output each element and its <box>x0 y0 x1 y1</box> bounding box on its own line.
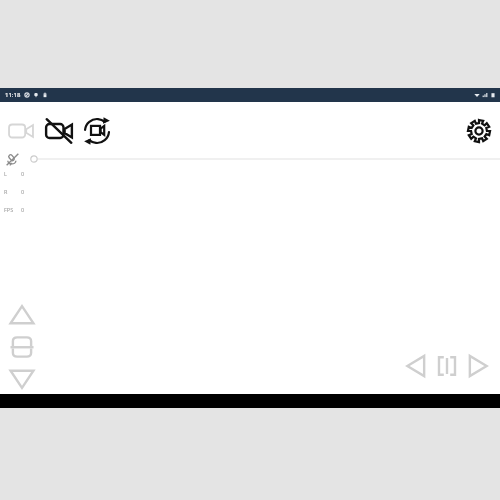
button[interactable]: Previous <box>400 350 432 382</box>
staticText: 0 <box>21 188 25 195</box>
staticText: R <box>4 188 8 195</box>
staticText: 11:18 <box>5 91 21 99</box>
button[interactable]: Volume slider <box>28 152 500 166</box>
button[interactable]: Down <box>5 362 39 396</box>
staticText: L <box>4 170 7 177</box>
button[interactable]: Microphone off <box>3 150 21 168</box>
staticText: 0 <box>21 170 25 177</box>
button[interactable]: Settings <box>462 114 496 148</box>
button[interactable]: Camera off <box>40 112 78 150</box>
staticText: FPS <box>4 206 14 213</box>
button[interactable]: Center <box>7 332 37 362</box>
staticText: 0 <box>21 206 25 213</box>
button[interactable]: Switch camera <box>78 112 116 150</box>
button[interactable]: Up <box>5 298 39 332</box>
button[interactable]: Camera <box>2 112 40 150</box>
button[interactable]: Next <box>462 350 494 382</box>
button[interactable]: Pause <box>432 351 462 381</box>
